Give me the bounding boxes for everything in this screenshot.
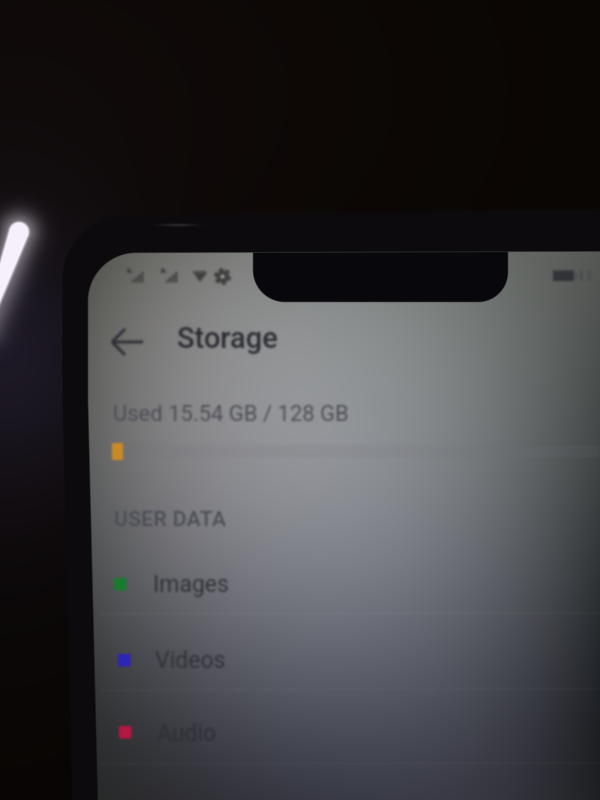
staticText: USER DATA xyxy=(114,507,227,532)
staticText: Storage xyxy=(177,321,278,355)
button[interactable]: Videos xyxy=(104,628,600,702)
button[interactable]: Images xyxy=(100,552,600,626)
button[interactable]: Audio xyxy=(105,700,600,774)
staticText: Audio xyxy=(157,720,217,747)
button[interactable]: Back xyxy=(106,320,154,368)
staticText: Videos xyxy=(155,647,226,674)
staticText: Images xyxy=(153,571,229,598)
staticText: Used 15.54 GB / 128 GB xyxy=(113,401,349,427)
